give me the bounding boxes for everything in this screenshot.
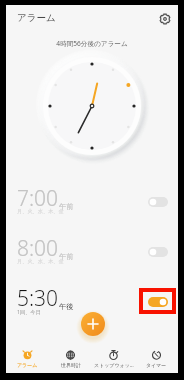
staticText: 月、火、水、木、金 [17,208,64,215]
staticText: 月、火、水、木、金 [17,258,64,265]
staticText: 午前 [59,202,74,211]
button[interactable]: 世界時計 [49,344,92,373]
button[interactable]: Add alarm [79,310,107,338]
button[interactable]: Alarm off [148,247,168,257]
staticText: アラーム [17,12,56,24]
staticText: タイマー [146,362,167,368]
button[interactable]: Alarm on [148,297,168,307]
staticText: 8:00 [17,234,59,263]
staticText: ストップウォッ… [94,362,134,369]
button[interactable]: アラーム [6,344,49,373]
staticText: 4時間56分後のアラーム [6,39,178,48]
button[interactable]: Alarm off [148,197,168,207]
staticText: 5:30 [17,284,59,313]
button[interactable]: ストップウォッ… [92,344,135,373]
staticText: アラーム [17,362,38,368]
staticText: 世界時計 [61,362,81,368]
staticText: 午前 [59,252,74,261]
staticText: 1回、今日 [17,308,41,315]
button[interactable]: 5:30 [6,277,178,327]
button[interactable]: 8:00 [6,227,178,277]
staticText: 午後 [59,302,74,311]
button[interactable]: Settings [156,10,173,27]
button[interactable]: 7:00 [6,177,178,227]
staticText: 7:00 [17,184,59,213]
button[interactable]: タイマー [135,344,178,373]
